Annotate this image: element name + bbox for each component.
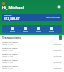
button[interactable]: Profile <box>2 2 5 5</box>
staticText: -$24.50 <box>53 48 62 51</box>
button[interactable]: Grocery Store <box>2 40 62 46</box>
staticText: Hi, Michael <box>2 5 25 10</box>
staticText: Today 14:01 <box>2 49 14 52</box>
staticText: -$24.50 <box>53 60 62 63</box>
staticText: Transactions <box>2 36 21 40</box>
button[interactable] <box>59 35 62 40</box>
button[interactable]: Action <box>23 27 28 32</box>
button[interactable]: Grocery Store <box>2 58 62 64</box>
button[interactable]: Balance <box>2 14 62 21</box>
button[interactable]: Action <box>49 27 54 32</box>
staticText: Grocery Store <box>2 40 18 43</box>
button[interactable]: Notifications <box>57 5 61 9</box>
staticText: -$24.50 <box>53 66 62 69</box>
staticText: -$24.50 <box>53 54 62 57</box>
staticText: Today 14:03 <box>2 61 14 64</box>
staticText: -$24.50 <box>53 42 62 45</box>
button[interactable]: Grocery Store <box>2 46 62 52</box>
staticText: Today 14:00 <box>2 43 14 46</box>
staticText: Grocery Store <box>2 58 18 61</box>
button[interactable]: Grocery Store <box>2 64 62 70</box>
staticText: VISA ****1234 <box>46 16 60 19</box>
button[interactable]: Action <box>36 27 41 32</box>
button[interactable]: Action <box>10 27 15 32</box>
staticText: Today 14:02 <box>2 55 14 58</box>
button[interactable]: Grocery Store <box>2 52 62 58</box>
staticText: Grocery Store <box>2 52 18 55</box>
staticText: $12,345.67 <box>4 17 20 21</box>
staticText: Balance <box>4 14 12 17</box>
staticText: Grocery Store <box>2 46 18 49</box>
staticText: Today 14:04 <box>2 67 14 70</box>
staticText: Grocery Store <box>2 64 18 67</box>
